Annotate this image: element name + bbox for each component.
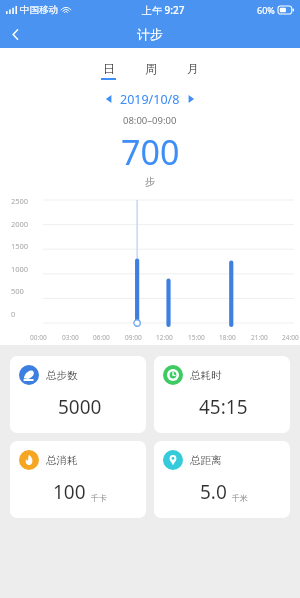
staticText: 总消耗 — [46, 454, 78, 467]
staticText: 100 — [53, 479, 86, 505]
staticText: 06:00 — [93, 333, 110, 342]
staticText: 日 — [103, 61, 115, 76]
staticText: 中国移动 — [20, 4, 58, 16]
staticText: 700 — [121, 129, 180, 175]
button[interactable]: 总消耗 — [10, 441, 146, 518]
staticText: 15:00 — [188, 333, 205, 342]
staticText: 2019/10/8 — [120, 91, 180, 108]
button[interactable]: Next day — [182, 90, 200, 108]
staticText: 总耗时 — [190, 369, 222, 382]
staticText: 步 — [145, 175, 155, 188]
staticText: 18:00 — [219, 333, 236, 342]
button[interactable]: 总距离 — [154, 441, 290, 518]
staticText: 总步数 — [46, 369, 78, 382]
staticText: 03:00 — [62, 333, 79, 342]
staticText: 上午 9:27 — [142, 3, 185, 17]
button[interactable]: Previous day — [100, 90, 118, 108]
staticText: 千卡 — [91, 493, 107, 503]
staticText: 计步 — [137, 26, 163, 42]
staticText: 1500 — [11, 241, 29, 251]
button[interactable]: 周 — [138, 59, 163, 82]
staticText: 08:00–09:00 — [123, 114, 177, 127]
staticText: 总距离 — [190, 454, 222, 467]
staticText: 09:00 — [125, 333, 142, 342]
staticText: 1000 — [11, 264, 29, 274]
staticText: 60% — [257, 4, 275, 16]
staticText: 500 — [11, 286, 24, 296]
button[interactable]: 总耗时 — [154, 356, 290, 433]
staticText: 21:00 — [251, 333, 268, 342]
staticText: 2000 — [11, 219, 29, 229]
button[interactable]: 总步数 — [10, 356, 146, 433]
staticText: 2500 — [11, 196, 29, 206]
button[interactable]: 月 — [180, 59, 205, 82]
staticText: 00:00 — [30, 333, 47, 342]
staticText: 0 — [11, 309, 16, 319]
staticText: 5.0 — [200, 479, 227, 505]
staticText: 5000 — [58, 394, 102, 420]
staticText: 月 — [187, 61, 199, 76]
staticText: 周 — [145, 61, 157, 76]
staticText: 45:15 — [199, 394, 248, 420]
staticText: 千米 — [232, 493, 248, 503]
staticText: 12:00 — [156, 333, 173, 342]
button[interactable]: 日 — [96, 59, 121, 82]
button[interactable]: Back — [0, 20, 30, 48]
staticText: 24:00 — [282, 333, 299, 342]
